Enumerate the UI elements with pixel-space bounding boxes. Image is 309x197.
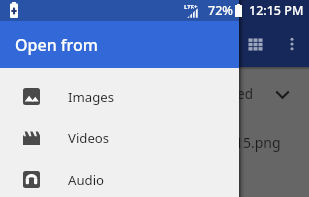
staticText: 72%: [208, 2, 233, 19]
button[interactable]: Audio: [0, 159, 239, 197]
staticText: 12:15 PM: [249, 2, 304, 19]
staticText: Sorted: [211, 85, 253, 103]
button[interactable]: Sorted: [211, 83, 290, 105]
staticText: Open from: [15, 34, 98, 56]
staticText: Audio: [68, 171, 105, 189]
staticText: LTE+: [184, 3, 198, 11]
staticText: Images: [68, 88, 115, 106]
button[interactable]: Videos: [0, 117, 239, 158]
button[interactable]: More options: [280, 32, 304, 56]
staticText: IMG_20170915.png: [153, 133, 281, 152]
button[interactable]: Images: [0, 76, 239, 117]
button[interactable]: Grid view: [243, 32, 267, 56]
staticText: Videos: [68, 129, 110, 147]
